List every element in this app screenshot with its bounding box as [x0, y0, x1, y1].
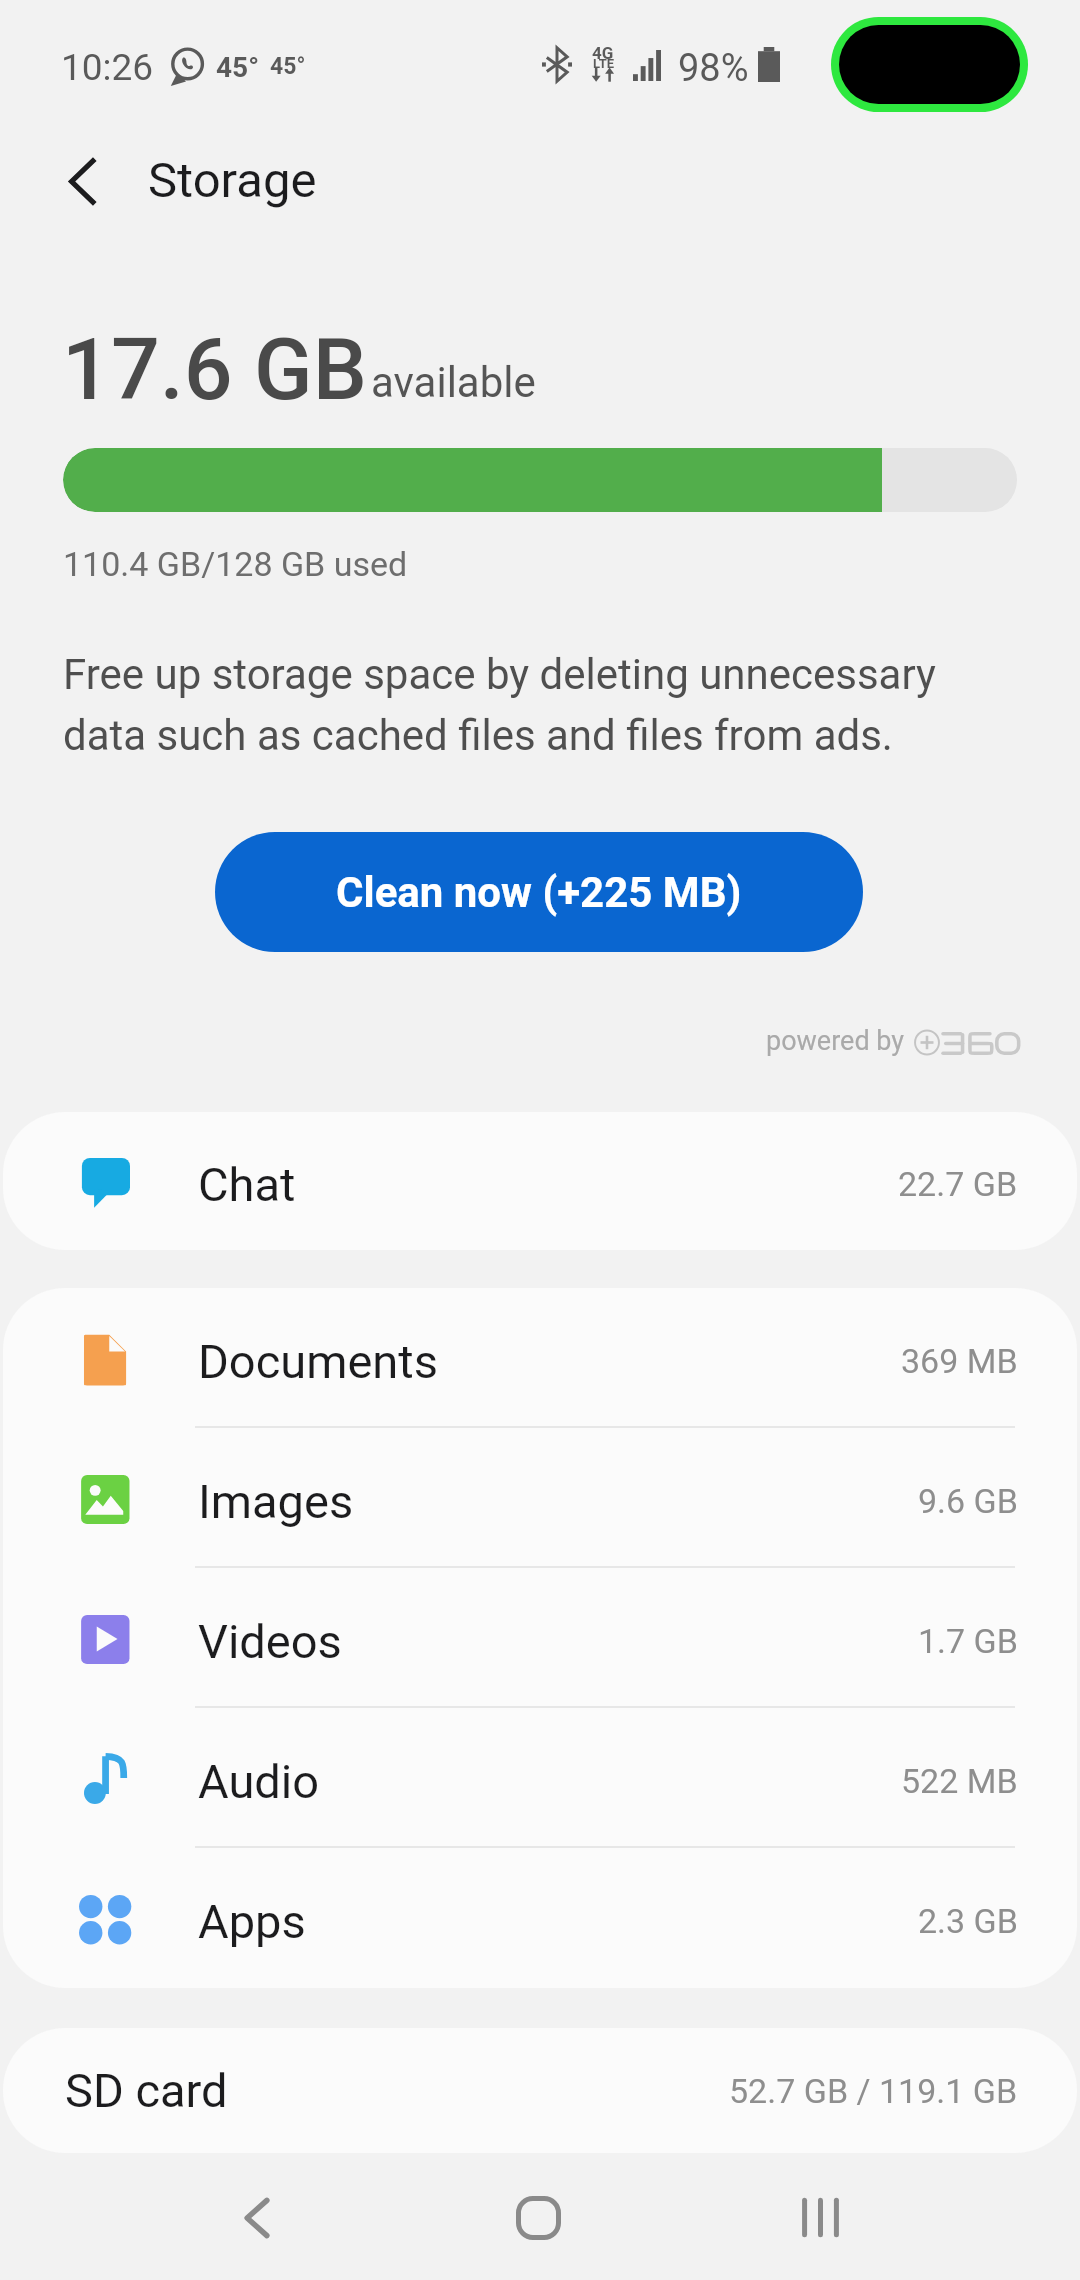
staticText: 98% — [678, 46, 749, 91]
staticText: Videos — [198, 1614, 342, 1669]
staticText: 10:26 — [61, 46, 154, 89]
staticText: 1.7 GB — [918, 1621, 1018, 1661]
staticText: 9.6 GB — [918, 1481, 1018, 1521]
button[interactable]: Back — [40, 139, 124, 223]
button[interactable]: Apps — [3, 1848, 1077, 1988]
button[interactable]: Chat — [3, 1112, 1077, 1250]
staticText: 4G — [592, 43, 614, 63]
staticText: powered by — [766, 1025, 905, 1057]
button[interactable]: Images — [3, 1428, 1077, 1568]
button[interactable]: Recent apps — [770, 2165, 870, 2270]
button[interactable]: Clean now (+225 MB) — [215, 832, 863, 952]
button[interactable]: Back — [207, 2165, 307, 2270]
button[interactable]: Videos — [3, 1568, 1077, 1708]
button[interactable]: Documents — [3, 1288, 1077, 1428]
staticText: 45° — [216, 51, 260, 84]
staticText: 52.7 GB / 119.1 GB — [729, 2071, 1018, 2111]
staticText: Apps — [198, 1894, 306, 1949]
staticText: Images — [198, 1474, 354, 1529]
staticText: 22.7 GB — [898, 1164, 1018, 1204]
staticText: 522 MB — [901, 1761, 1018, 1801]
staticText: Documents — [198, 1334, 438, 1389]
staticText: 369 MB — [901, 1341, 1018, 1381]
staticText: SD card — [65, 2063, 228, 2118]
staticText: 45° — [270, 53, 306, 80]
staticText: Free up storage space by deleting unnece… — [63, 650, 1003, 761]
button[interactable]: Home — [488, 2165, 588, 2270]
staticText: LTE — [593, 56, 615, 71]
staticText: 2.3 GB — [918, 1901, 1018, 1941]
staticText: Chat — [198, 1157, 296, 1212]
staticText: available — [371, 358, 536, 407]
staticText: 17.6 GB — [62, 319, 367, 420]
button[interactable]: Audio — [3, 1708, 1077, 1848]
staticText: 110.4 GB/128 GB used — [63, 544, 408, 584]
button[interactable]: SD card — [3, 2028, 1077, 2153]
staticText: Audio — [198, 1754, 320, 1809]
staticText: Storage — [148, 152, 317, 209]
staticText: Clean now (+225 MB) — [336, 868, 742, 917]
